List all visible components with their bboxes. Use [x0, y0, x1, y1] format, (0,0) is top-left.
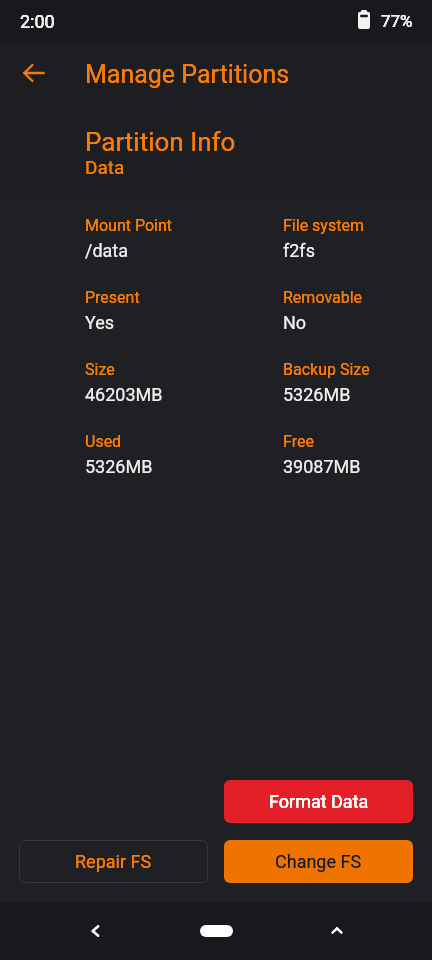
- staticText: 5326MB: [283, 384, 351, 405]
- staticText: Data: [85, 156, 125, 178]
- staticText: 39087MB: [283, 456, 361, 477]
- staticText: Backup Size: [283, 360, 370, 379]
- staticText: Partition Info: [85, 127, 236, 157]
- staticText: Format Data: [269, 791, 369, 812]
- staticText: f2fs: [283, 240, 315, 261]
- button[interactable]: Change FS: [224, 840, 413, 883]
- staticText: Mount Point: [85, 216, 173, 235]
- staticText: Data: [85, 156, 125, 178]
- staticText: Backup Size: [283, 360, 370, 379]
- staticText: 46203MB: [85, 384, 163, 405]
- button[interactable]: Format Data: [224, 780, 413, 823]
- staticText: Partition Info: [85, 127, 236, 157]
- button[interactable]: Home: [186, 916, 246, 946]
- staticText: Free: [283, 432, 314, 451]
- staticText: /data: [85, 240, 129, 261]
- staticText: Mount Point: [85, 216, 173, 235]
- staticText: 77%: [381, 11, 413, 31]
- staticText: Present: [85, 288, 140, 307]
- staticText: 77%: [381, 11, 413, 31]
- staticText: Change FS: [275, 851, 362, 872]
- staticText: File system: [283, 216, 364, 235]
- staticText: Manage Partitions: [85, 60, 290, 89]
- staticText: Present: [85, 288, 140, 307]
- staticText: Size: [85, 360, 115, 379]
- staticText: Change FS: [275, 851, 362, 872]
- staticText: Removable: [283, 288, 363, 307]
- staticText: File system: [283, 216, 364, 235]
- staticText: 2:00: [20, 11, 55, 32]
- button[interactable]: Recents: [317, 911, 357, 951]
- staticText: 5326MB: [85, 456, 153, 477]
- button[interactable]: Repair FS: [19, 840, 208, 883]
- staticText: Yes: [85, 312, 115, 333]
- staticText: Used: [85, 432, 122, 451]
- staticText: Used: [85, 432, 122, 451]
- staticText: 2:00: [20, 11, 55, 32]
- staticText: Size: [85, 360, 115, 379]
- staticText: Free: [283, 432, 314, 451]
- staticText: Repair FS: [75, 851, 152, 872]
- button[interactable]: Back: [75, 911, 115, 951]
- staticText: Format Data: [269, 791, 369, 812]
- staticText: No: [283, 312, 307, 333]
- staticText: Manage Partitions: [85, 60, 290, 89]
- staticText: Removable: [283, 288, 363, 307]
- staticText: Repair FS: [75, 851, 152, 872]
- button[interactable]: Back: [11, 50, 57, 96]
